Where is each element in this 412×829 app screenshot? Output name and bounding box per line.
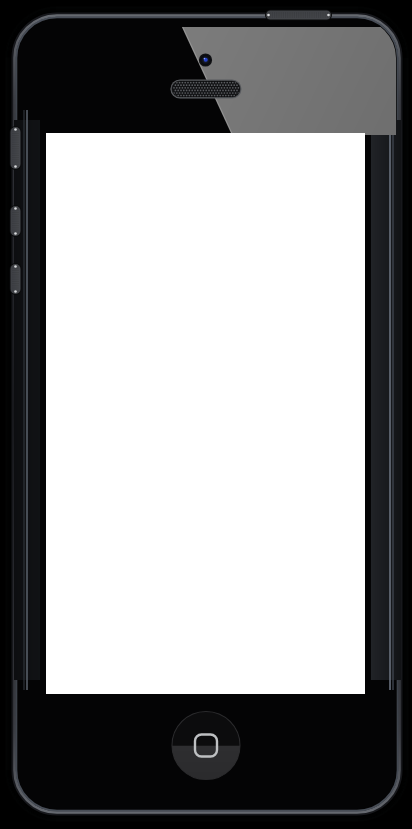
button[interactable]: Smartphone device mockup <box>0 0 412 829</box>
